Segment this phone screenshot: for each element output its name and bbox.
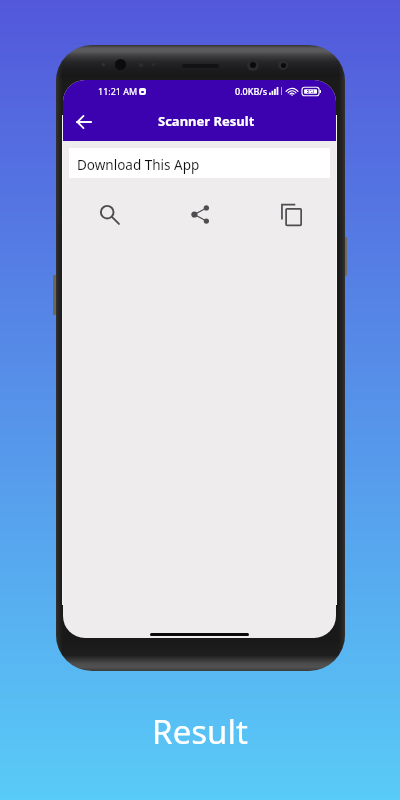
staticText: Result (0, 709, 400, 754)
button[interactable]: Search (87, 192, 131, 236)
button[interactable]: Copy (269, 192, 313, 236)
button[interactable]: Download This App (69, 148, 330, 178)
button[interactable]: Share (178, 192, 222, 236)
staticText: Download This App (77, 156, 200, 174)
staticText: 0.0KB/s (235, 85, 268, 97)
button[interactable]: Back (63, 101, 105, 141)
staticText: Scanner Result (158, 112, 255, 130)
staticText: 11:21 AM (98, 85, 138, 97)
